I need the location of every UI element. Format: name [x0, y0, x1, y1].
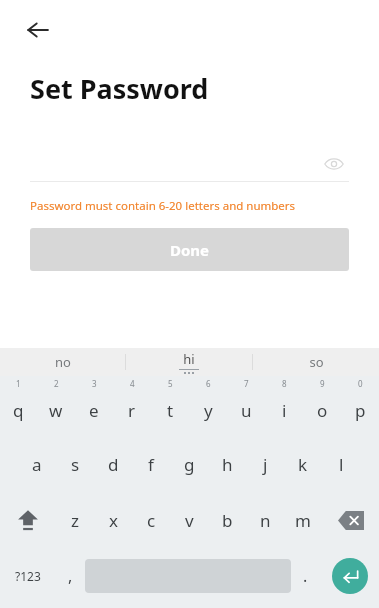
button[interactable]: d: [94, 436, 132, 492]
button[interactable]: Back: [18, 10, 58, 50]
staticText: f: [148, 453, 154, 476]
button[interactable]: h: [208, 436, 246, 492]
staticText: 9: [320, 378, 325, 389]
staticText: x: [109, 509, 118, 532]
staticText: 7: [244, 378, 249, 389]
staticText: z: [71, 509, 79, 532]
button[interactable]: 8: [265, 379, 303, 436]
staticText: i: [282, 399, 287, 422]
staticText: c: [147, 509, 156, 532]
staticText: b: [222, 509, 233, 532]
button[interactable]: Enter: [320, 548, 379, 604]
button[interactable]: b: [208, 492, 246, 548]
staticText: w: [49, 399, 63, 422]
button[interactable]: 4: [113, 379, 151, 436]
button[interactable]: 2: [37, 379, 75, 436]
staticText: .: [303, 565, 308, 587]
button[interactable]: .: [291, 548, 320, 604]
button[interactable]: Backspace: [322, 492, 379, 548]
button[interactable]: 0: [341, 379, 379, 436]
staticText: 2: [54, 378, 59, 389]
staticText: Done: [170, 240, 210, 260]
staticText: 3: [92, 378, 97, 389]
button[interactable]: j: [246, 436, 284, 492]
staticText: h: [222, 453, 233, 476]
staticText: so: [309, 353, 324, 371]
button[interactable]: 9: [303, 379, 341, 436]
button[interactable]: so: [253, 348, 379, 376]
staticText: d: [108, 453, 119, 476]
button[interactable]: n: [246, 492, 284, 548]
button[interactable]: 7: [227, 379, 265, 436]
staticText: q: [13, 399, 24, 422]
staticText: t: [167, 399, 174, 422]
button[interactable]: 3: [75, 379, 113, 436]
button[interactable]: l: [322, 436, 360, 492]
staticText: 6: [206, 378, 211, 389]
staticText: u: [241, 399, 252, 422]
button[interactable]: s: [56, 436, 94, 492]
staticText: Password must contain 6-20 letters and n…: [30, 198, 296, 214]
button[interactable]: k: [284, 436, 322, 492]
button[interactable]: hi: [126, 348, 252, 376]
button[interactable]: Show password: [319, 149, 349, 179]
staticText: a: [32, 453, 42, 476]
staticText: o: [317, 399, 328, 422]
staticText: y: [204, 399, 213, 422]
staticText: 0: [358, 378, 363, 389]
staticText: no: [55, 353, 71, 371]
button[interactable]: 6: [189, 379, 227, 436]
staticText: ,: [68, 565, 73, 587]
button[interactable]: Shift: [0, 492, 56, 548]
staticText: Set Password: [30, 70, 209, 107]
staticText: k: [298, 453, 308, 476]
button[interactable]: c: [132, 492, 170, 548]
button[interactable]: a: [18, 436, 56, 492]
staticText: 5: [168, 378, 173, 389]
staticText: v: [185, 509, 194, 532]
staticText: 1: [16, 378, 21, 389]
staticText: e: [89, 399, 99, 422]
staticText: g: [184, 453, 195, 476]
staticText: 4: [130, 378, 135, 389]
staticText: 8: [282, 378, 287, 389]
staticText: l: [339, 453, 344, 476]
button[interactable]: Done: [30, 228, 349, 271]
button[interactable]: f: [132, 436, 170, 492]
staticText: s: [71, 453, 80, 476]
button[interactable]: 5: [151, 379, 189, 436]
staticText: m: [295, 509, 311, 532]
button[interactable]: m: [284, 492, 322, 548]
button[interactable]: x: [94, 492, 132, 548]
button[interactable]: g: [170, 436, 208, 492]
staticText: r: [128, 399, 136, 422]
button[interactable]: no: [0, 348, 125, 376]
button[interactable]: 1: [0, 379, 37, 436]
button[interactable]: ?123: [0, 548, 56, 604]
staticText: hi: [183, 350, 195, 368]
staticText: p: [355, 399, 366, 422]
staticText: j: [263, 453, 268, 476]
staticText: ?123: [15, 568, 41, 584]
staticText: n: [260, 509, 271, 532]
button[interactable]: ,: [56, 548, 85, 604]
button[interactable]: z: [56, 492, 94, 548]
button[interactable]: v: [170, 492, 208, 548]
